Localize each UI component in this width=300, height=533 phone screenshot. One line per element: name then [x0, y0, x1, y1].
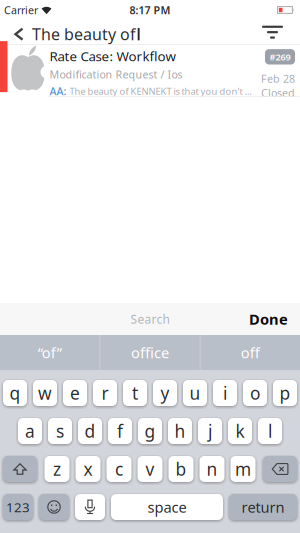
- staticText: Closed: [261, 86, 295, 100]
- staticText: m: [235, 457, 251, 480]
- staticText: Search: [130, 311, 169, 327]
- button[interactable]: w: [33, 380, 57, 406]
- button[interactable]: Rate Case: Workflow: [0, 45, 300, 96]
- staticText: Modification Request / Ios: [49, 67, 182, 81]
- button[interactable]: Search field: The beauty of: [32, 21, 262, 43]
- staticText: g: [144, 419, 155, 442]
- button[interactable]: a: [18, 418, 42, 444]
- button[interactable]: h: [168, 418, 192, 444]
- button[interactable]: c: [106, 456, 131, 482]
- button[interactable]: j: [198, 418, 222, 444]
- staticText: o: [250, 381, 260, 404]
- button[interactable]: “of”: [0, 335, 99, 370]
- button[interactable]: f: [108, 418, 132, 444]
- staticText: 123: [6, 498, 30, 516]
- button[interactable]: g: [138, 418, 162, 444]
- button[interactable]: Shift: [3, 456, 37, 482]
- button[interactable]: k: [228, 418, 252, 444]
- staticText: The beauty of KENNEKT is that you don't …: [69, 85, 253, 97]
- button[interactable]: n: [199, 456, 224, 482]
- button[interactable]: d: [78, 418, 102, 444]
- button[interactable]: q: [3, 380, 27, 406]
- button[interactable]: o: [243, 380, 267, 406]
- button[interactable]: off: [201, 335, 300, 370]
- button[interactable]: b: [168, 456, 193, 482]
- button[interactable]: y: [153, 380, 177, 406]
- button[interactable]: i: [213, 380, 237, 406]
- button[interactable]: Back: [0, 26, 32, 39]
- button[interactable]: e: [63, 380, 87, 406]
- staticText: j: [208, 419, 212, 442]
- button[interactable]: Dictate: [75, 494, 105, 520]
- staticText: k: [235, 419, 244, 442]
- staticText: s: [56, 419, 64, 442]
- staticText: Carrier: [4, 3, 38, 17]
- staticText: return: [241, 497, 284, 517]
- staticText: x: [83, 457, 92, 480]
- staticText: e: [70, 381, 80, 404]
- staticText: c: [115, 457, 123, 480]
- staticText: p: [279, 381, 290, 404]
- button[interactable]: r: [93, 380, 117, 406]
- button[interactable]: Numbers: [3, 494, 33, 520]
- button[interactable]: l: [258, 418, 282, 444]
- staticText: n: [206, 457, 217, 480]
- button[interactable]: z: [44, 456, 69, 482]
- button[interactable]: Filter: [262, 26, 300, 39]
- staticText: Rate Case: Workflow: [49, 47, 175, 65]
- staticText: The beauty of: [32, 23, 136, 45]
- button[interactable]: Done: [249, 309, 300, 329]
- button[interactable]: Delete: [263, 456, 297, 482]
- staticText: t: [132, 381, 138, 404]
- staticText: h: [174, 419, 185, 442]
- staticText: “of”: [38, 343, 62, 362]
- staticText: q: [9, 381, 20, 404]
- staticText: w: [38, 381, 52, 404]
- button[interactable]: return: [229, 494, 297, 520]
- staticText: Feb 28: [261, 71, 295, 86]
- staticText: 8:17 PM: [129, 3, 170, 17]
- staticText: AA:: [49, 84, 66, 98]
- staticText: d: [84, 419, 95, 442]
- staticText: y: [160, 381, 169, 404]
- staticText: off: [241, 343, 260, 362]
- staticText: l: [268, 419, 272, 442]
- staticText: i: [223, 381, 227, 404]
- staticText: #269: [269, 51, 290, 63]
- button[interactable]: office: [100, 335, 200, 370]
- button[interactable]: u: [183, 380, 207, 406]
- button[interactable]: t: [123, 380, 147, 406]
- button[interactable]: s: [48, 418, 72, 444]
- staticText: b: [175, 457, 186, 480]
- staticText: a: [25, 419, 35, 442]
- button[interactable]: x: [75, 456, 100, 482]
- staticText: space: [147, 497, 186, 517]
- staticText: Done: [249, 309, 288, 329]
- staticText: v: [145, 457, 154, 480]
- staticText: office: [131, 343, 169, 362]
- button[interactable]: p: [273, 380, 297, 406]
- staticText: u: [189, 381, 200, 404]
- staticText: z: [53, 457, 61, 480]
- button[interactable]: v: [137, 456, 162, 482]
- staticText: f: [117, 419, 123, 442]
- button[interactable]: space: [111, 494, 223, 520]
- staticText: r: [101, 381, 108, 404]
- button[interactable]: m: [230, 456, 255, 482]
- button[interactable]: Emoji: [39, 494, 69, 520]
